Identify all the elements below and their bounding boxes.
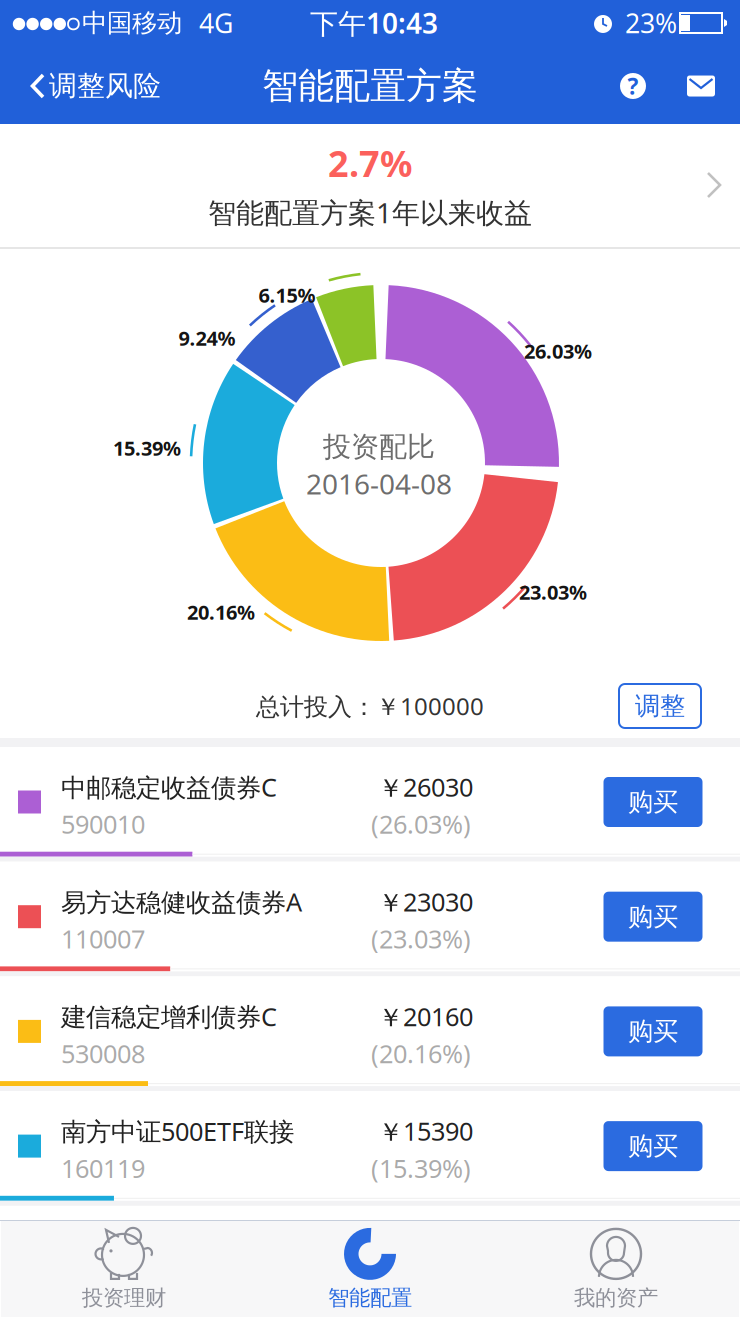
staticText: 4G [199,5,233,41]
staticText: ? [627,71,638,101]
staticText: 投资配比 [323,430,435,464]
button[interactable]: 智能配置 [247,1221,493,1317]
staticText: 我的资产 [574,1285,658,1311]
button[interactable]: 建信稳定增利债券C [0,976,740,1081]
staticText: 智能配置方案 [262,64,478,108]
staticText: 调整 [635,690,685,721]
button[interactable]: Messages [673,58,729,114]
staticText: 下午10:43 [310,4,438,42]
staticText: 9.24% [178,325,235,351]
staticText: 6.15% [258,282,315,308]
staticText: 中国移动 [82,7,182,38]
staticText: 110007 [61,922,145,955]
staticText: 530008 [61,1037,145,1070]
staticText: 智能配置方案1年以来收益 [208,194,532,231]
staticText: 中邮稳定收益债券C [61,770,277,804]
button[interactable]: 调整 [619,684,701,728]
staticText: ￥20160 [378,999,473,1033]
staticText: (20.16%) [371,1037,471,1070]
button[interactable]: 投资理财 [1,1221,247,1317]
staticText: ￥15390 [378,1114,473,1148]
staticText: 20.16% [187,599,255,625]
staticText: (23.03%) [371,922,471,955]
staticText: 2.7% [328,139,412,187]
staticText: 智能配置 [328,1285,412,1311]
staticText: (15.39%) [371,1151,471,1185]
button[interactable]: Help [605,58,661,114]
staticText: 易方达稳健收益债券A [61,885,302,918]
button[interactable]: 中邮稳定收益债券C [0,747,740,852]
staticText: 160119 [61,1151,145,1185]
staticText: 购买 [628,1130,678,1162]
staticText: 投资理财 [82,1285,166,1311]
button[interactable]: 易方达稳健收益债券A [0,862,740,966]
button[interactable]: 我的资产 [493,1221,739,1317]
staticText: 23% [625,5,677,41]
staticText: 购买 [628,1016,678,1047]
button[interactable]: 2.7% [0,124,740,247]
staticText: ￥23030 [378,885,473,919]
staticText: 购买 [628,786,678,817]
staticText: 南方中证500ETF联接 [61,1114,294,1148]
staticText: 26.03% [524,338,592,364]
staticText: 购买 [628,901,678,932]
staticText: ￥26030 [378,770,473,804]
staticText: 建信稳定增利债券C [61,1000,277,1033]
staticText: 23.03% [519,579,587,605]
button[interactable]: 调整风险 [30,56,190,116]
staticText: (26.03%) [371,807,471,841]
button[interactable]: 南方中证500ETF联接 [0,1091,740,1196]
staticText: 调整风险 [49,69,161,103]
staticText: 590010 [61,807,145,841]
staticText: 15.39% [113,435,181,461]
staticText: 总计投入：￥100000 [256,690,484,722]
staticText: 2016-04-08 [306,465,452,502]
